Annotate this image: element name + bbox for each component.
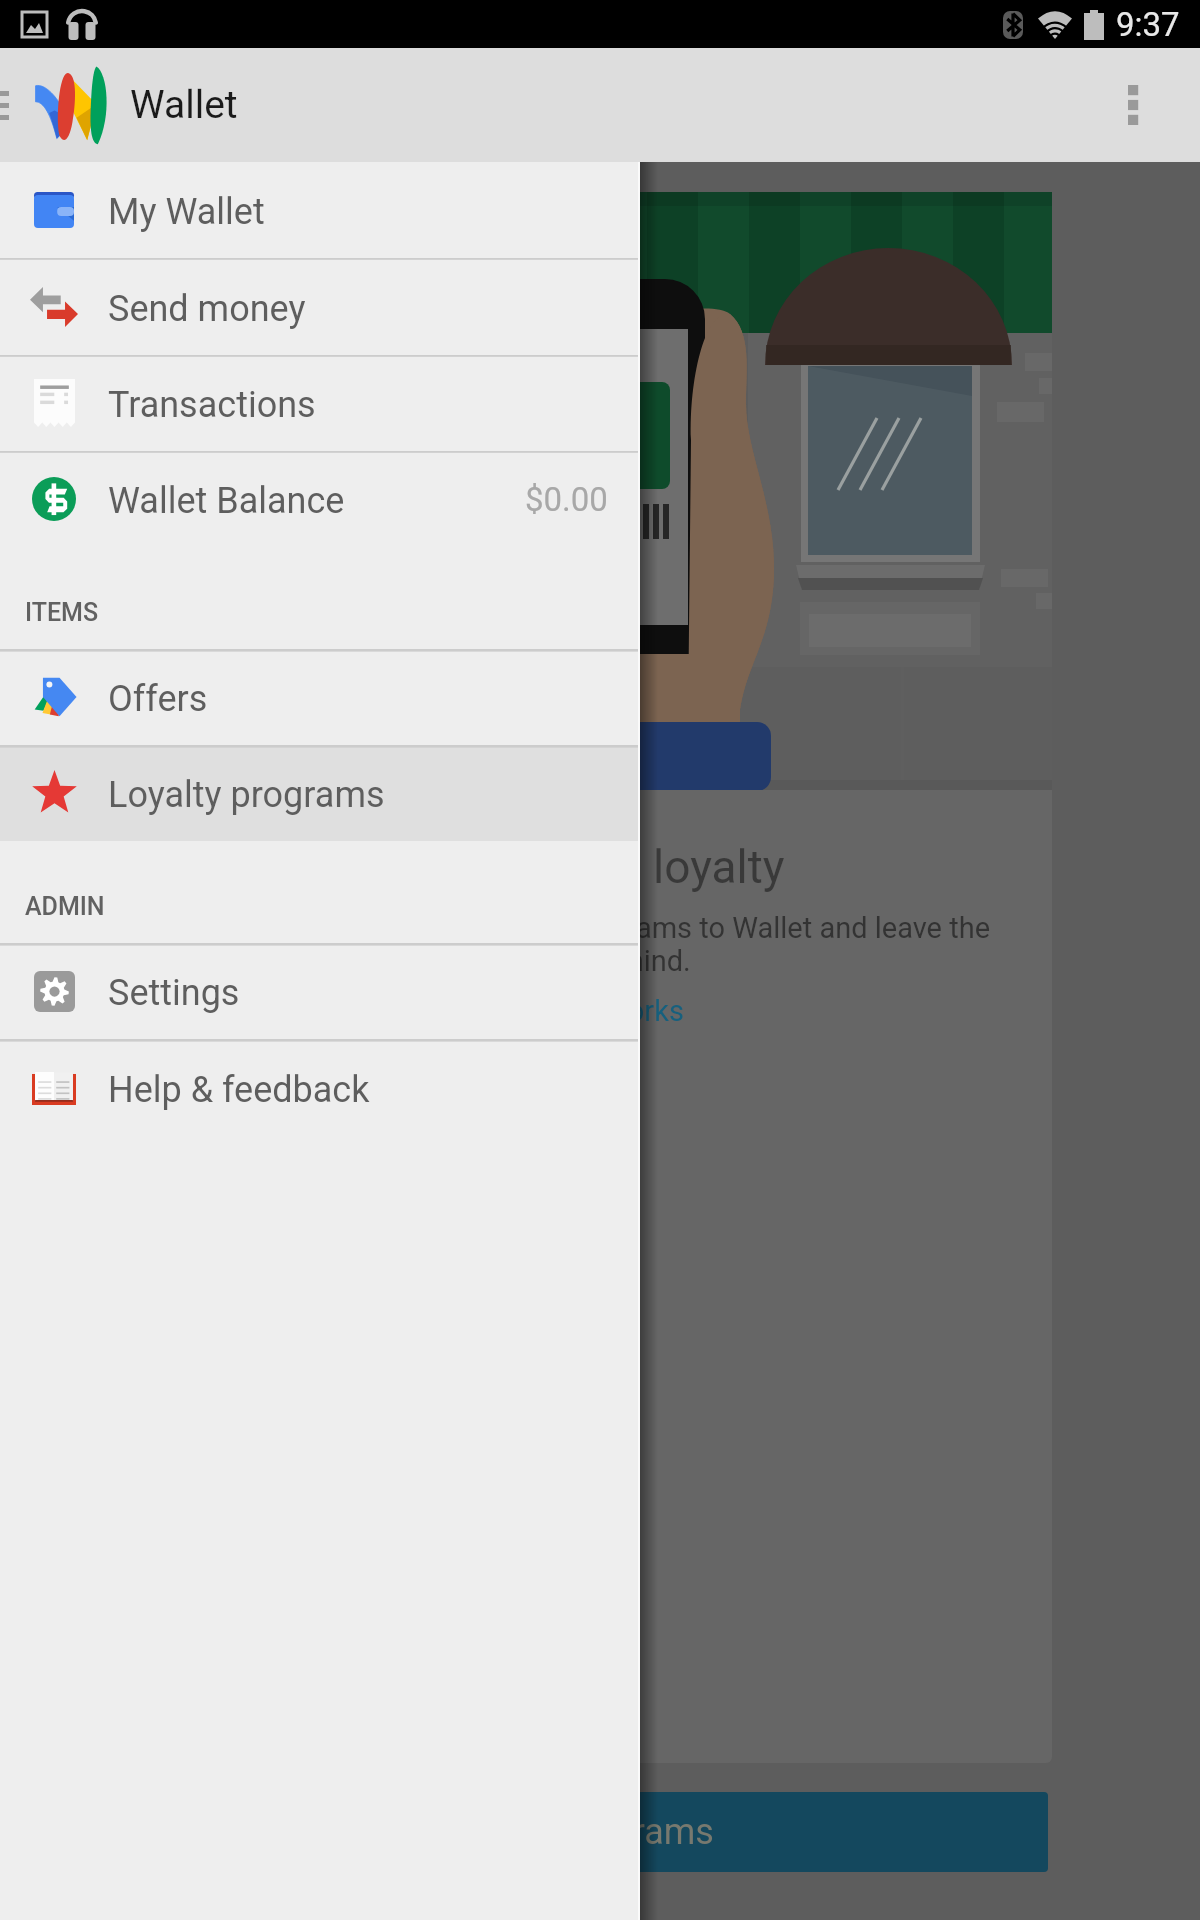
- staticText: ADMIN: [25, 892, 105, 921]
- button[interactable]: Help & feedback: [0, 1039, 638, 1136]
- staticText: Learn how it works: [441, 994, 684, 1028]
- staticText: ITEMS: [25, 598, 99, 627]
- staticText: $0.00: [525, 480, 608, 519]
- staticText: My Wallet: [108, 191, 265, 233]
- button[interactable]: Settings: [0, 943, 638, 1039]
- staticText: Send money: [108, 288, 306, 330]
- staticText: Add your loyalty programs to Wallet and …: [356, 911, 991, 945]
- button[interactable]: Loyalty programs: [0, 745, 638, 841]
- staticText: plastic cards behind.: [424, 944, 691, 978]
- button[interactable]: Transactions: [0, 355, 638, 451]
- button[interactable]: Learn how it works: [441, 994, 684, 1028]
- staticText: Offers: [108, 678, 208, 720]
- button[interactable]: My Wallet: [0, 162, 638, 258]
- staticText: 9:37: [1116, 5, 1180, 44]
- button[interactable]: Open navigation drawer: [0, 60, 30, 150]
- staticText: Digital loyalty: [512, 840, 785, 894]
- button[interactable]: Wallet Balance: [0, 451, 638, 547]
- staticText: Settings: [108, 972, 240, 1014]
- staticText: Wallet: [130, 82, 238, 128]
- button[interactable]: Send money: [0, 258, 638, 355]
- staticText: Loyalty programs: [108, 774, 385, 816]
- button[interactable]: Offers: [0, 649, 638, 745]
- staticText: Help & feedback: [108, 1069, 370, 1111]
- button[interactable]: Add loyalty programs: [84, 1792, 1048, 1872]
- staticText: Transactions: [108, 384, 316, 426]
- button[interactable]: More options: [1088, 48, 1200, 162]
- staticText: Add loyalty programs: [375, 1811, 714, 1853]
- staticText: Wallet Balance: [108, 480, 345, 522]
